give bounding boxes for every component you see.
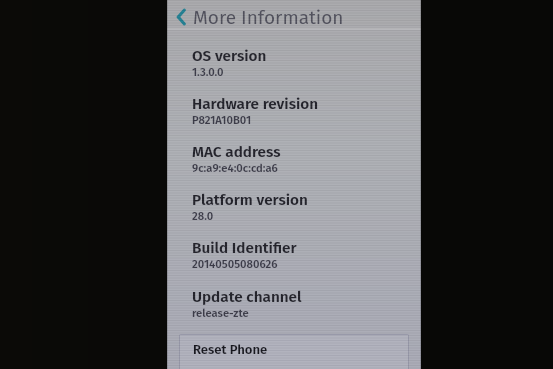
button[interactable]: Build Identifier [167, 239, 421, 283]
staticText: Platform version [192, 191, 308, 209]
staticText: Build Identifier [192, 239, 297, 257]
staticText: Reset Phone [193, 342, 268, 358]
staticText: release-zte [192, 307, 249, 320]
staticText: 9c:a9:e4:0c:cd:a6 [192, 162, 278, 175]
button[interactable]: Back [167, 0, 421, 34]
staticText: OS version [192, 47, 267, 65]
staticText: MAC address [192, 143, 281, 161]
button[interactable]: Hardware revision [167, 95, 421, 139]
staticText: 1.3.0.0 [192, 66, 224, 79]
staticText: More Information [193, 6, 344, 29]
button[interactable]: Reset Phone [180, 335, 408, 369]
staticText: P821A10B01 [192, 114, 252, 127]
button[interactable]: MAC address [167, 143, 421, 187]
other: Back [176, 7, 186, 27]
staticText: 28.0 [192, 210, 214, 223]
button[interactable]: Update channel [167, 288, 421, 332]
staticText: Update channel [192, 288, 302, 306]
staticText: 20140505080626 [192, 258, 278, 271]
button[interactable]: OS version [167, 47, 421, 91]
button[interactable]: Platform version [167, 191, 421, 235]
staticText: Hardware revision [192, 95, 319, 113]
